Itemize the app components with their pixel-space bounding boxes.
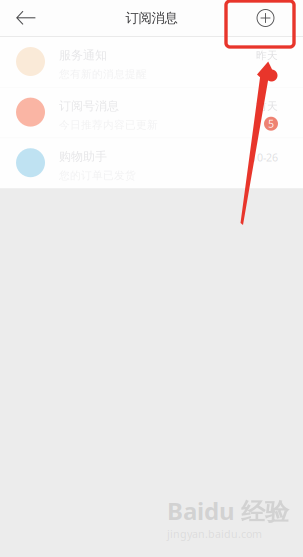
staticText: Baidu 经验 [167, 495, 289, 527]
staticText: jingyan.baidu.com [167, 527, 262, 541]
staticText: 服务通知 [59, 48, 107, 63]
staticText: 前天 [256, 100, 278, 113]
staticText: 您的订单已发货 [59, 169, 136, 182]
staticText: 订阅消息 [125, 10, 177, 26]
button[interactable]: 订阅号消息 [0, 88, 303, 138]
button[interactable]: 购物助手 [0, 138, 303, 188]
staticText: 今日推荐内容已更新 [59, 118, 158, 131]
staticText: 您有新的消息提醒 [59, 68, 147, 81]
staticText: 购物助手 [59, 149, 107, 164]
staticText: 5 [268, 117, 274, 131]
staticText: 昨天 [256, 49, 278, 62]
button[interactable]: 服务通知 [0, 37, 303, 87]
button[interactable]: Back [0, 0, 48, 35]
staticText: 订阅号消息 [59, 99, 119, 113]
staticText: 10-26 [251, 150, 278, 164]
button[interactable]: New message [245, 0, 303, 35]
